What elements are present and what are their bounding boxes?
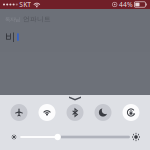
button[interactable]: Bluetooth	[61, 103, 89, 121]
button[interactable]: Wi-Fi	[33, 103, 61, 121]
staticText: 독자님	[5, 16, 20, 23]
staticText: 언파니트	[23, 15, 51, 23]
staticText: SKT	[19, 0, 31, 9]
button[interactable]: Rotation Lock	[117, 103, 145, 121]
button[interactable]: Airplane Mode	[5, 103, 33, 121]
staticText: 44%	[119, 0, 133, 9]
staticText: 비	[5, 30, 16, 44]
button[interactable]: Do Not Disturb	[89, 103, 117, 121]
